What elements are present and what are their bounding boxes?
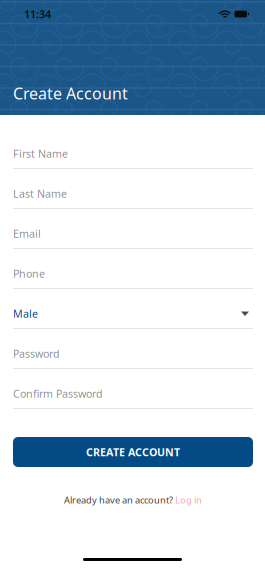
staticText: Create Account	[13, 83, 128, 104]
button[interactable]: Last Name	[13, 169, 253, 209]
staticText: Log in	[175, 494, 202, 506]
staticText: Email	[13, 226, 41, 241]
button[interactable]: Phone	[13, 249, 253, 289]
button[interactable]: Password	[13, 329, 253, 369]
staticText: Phone	[13, 266, 45, 281]
staticText: CREATE ACCOUNT	[86, 445, 180, 459]
staticText: Password	[13, 346, 60, 361]
button[interactable]: First Name	[13, 129, 253, 169]
staticText: Already have an account?	[64, 494, 175, 506]
staticText: Male	[13, 306, 38, 321]
staticText: First Name	[13, 146, 68, 161]
staticText: 11:34	[24, 7, 51, 21]
button[interactable]: Already have an account?	[13, 493, 253, 507]
button[interactable]: CREATE ACCOUNT	[13, 437, 253, 467]
staticText: Confirm Password	[13, 386, 103, 401]
button[interactable]: Confirm Password	[13, 369, 253, 409]
button[interactable]: Male	[13, 289, 253, 329]
button[interactable]: Email	[13, 209, 253, 249]
staticText: Last Name	[13, 186, 67, 201]
